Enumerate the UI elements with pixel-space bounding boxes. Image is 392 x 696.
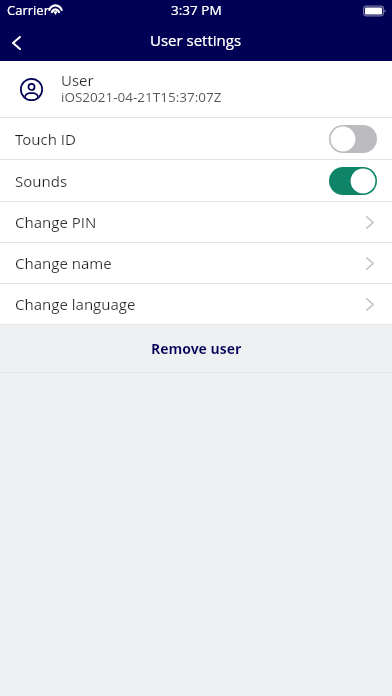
staticText: User: [61, 70, 94, 90]
button[interactable]: Change PIN: [0, 202, 392, 242]
staticText: Change PIN: [15, 212, 97, 232]
staticText: Change name: [15, 253, 112, 273]
staticText: Carrier: [7, 1, 49, 19]
staticText: Touch ID: [15, 129, 76, 149]
staticText: Change language: [15, 294, 136, 314]
staticText: Remove user: [151, 339, 242, 358]
staticText: iOS2021-04-21T15:37:07Z: [61, 88, 222, 106]
button[interactable]: Remove user: [0, 325, 392, 372]
button[interactable]: Back: [0, 22, 32, 61]
staticText: User settings: [150, 30, 242, 50]
button[interactable]: Touch ID: [0, 118, 392, 159]
button[interactable]: Sounds: [0, 160, 392, 201]
button[interactable]: Change name: [0, 243, 392, 283]
button[interactable]: User: [0, 61, 392, 117]
button[interactable]: Change language: [0, 284, 392, 324]
staticText: Sounds: [15, 171, 68, 191]
staticText: 3:37 PM: [171, 1, 222, 19]
